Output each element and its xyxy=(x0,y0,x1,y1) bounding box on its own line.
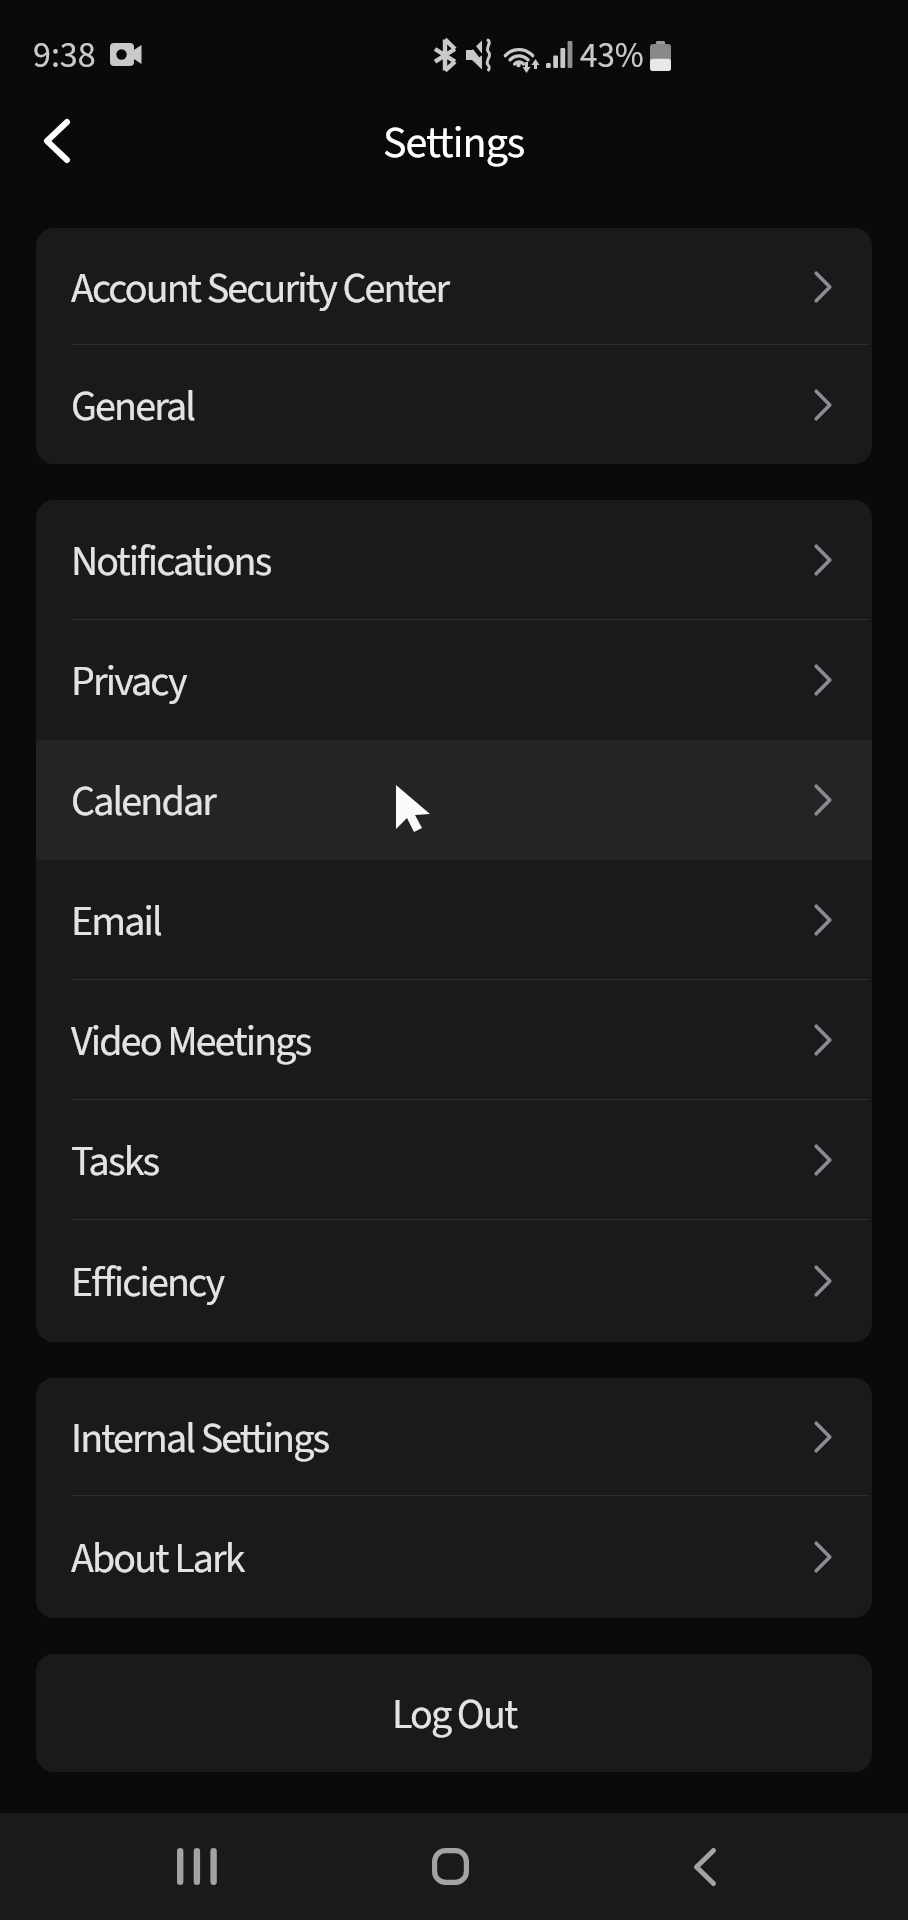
button[interactable]: Notifications xyxy=(36,500,872,620)
staticText: Calendar xyxy=(71,772,215,832)
button[interactable]: Internal Settings xyxy=(36,1378,872,1496)
staticText: Internal Settings xyxy=(71,1409,329,1469)
button[interactable]: Privacy xyxy=(36,620,872,740)
staticText: About Lark xyxy=(71,1529,244,1589)
staticText: 43% xyxy=(580,31,644,81)
button[interactable]: Home xyxy=(396,1813,504,1920)
staticText: Account Security Center xyxy=(71,259,449,319)
button[interactable]: Efficiency xyxy=(36,1220,872,1342)
staticText: Log Out xyxy=(392,1685,517,1745)
staticText: 9:38 xyxy=(33,30,96,81)
staticText: Privacy xyxy=(71,652,186,712)
staticText: Settings xyxy=(383,112,525,175)
button[interactable]: Back xyxy=(13,100,101,188)
staticText: Tasks xyxy=(71,1132,159,1192)
staticText: Video Meetings xyxy=(71,1012,311,1072)
button[interactable]: Log Out xyxy=(36,1654,872,1772)
button[interactable]: Back xyxy=(651,1813,759,1920)
button[interactable]: General xyxy=(36,345,872,464)
staticText: General xyxy=(71,377,195,437)
button[interactable]: Video Meetings xyxy=(36,980,872,1100)
button[interactable]: Email xyxy=(36,860,872,980)
button[interactable]: Tasks xyxy=(36,1100,872,1220)
staticText: Email xyxy=(71,892,161,952)
button[interactable]: Calendar xyxy=(36,740,872,860)
button[interactable]: Account Security Center xyxy=(36,228,872,345)
staticText: Notifications xyxy=(71,532,271,592)
staticText: Efficiency xyxy=(71,1253,224,1313)
button[interactable]: Recent apps xyxy=(141,1813,249,1920)
button[interactable]: About Lark xyxy=(36,1496,872,1618)
